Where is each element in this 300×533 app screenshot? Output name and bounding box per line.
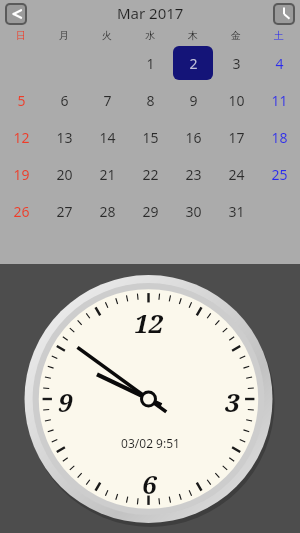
button[interactable]: 12: [1, 120, 41, 154]
staticText: 23: [185, 165, 202, 184]
staticText: 31: [228, 202, 245, 221]
staticText: 月: [59, 29, 69, 42]
staticText: 29: [142, 202, 159, 221]
staticText: 20: [56, 165, 73, 184]
button[interactable]: 23: [173, 157, 213, 191]
button[interactable]: 7: [87, 83, 127, 117]
staticText: 木: [188, 29, 198, 42]
staticText: 土: [274, 29, 284, 42]
staticText: 6: [60, 91, 69, 110]
button[interactable]: 16: [173, 120, 213, 154]
button[interactable]: Back: [5, 3, 27, 25]
button[interactable]: 3: [216, 46, 256, 80]
button[interactable]: 19: [1, 157, 41, 191]
staticText: 24: [228, 165, 245, 184]
button[interactable]: 6: [44, 83, 84, 117]
button[interactable]: 26: [1, 194, 41, 228]
staticText: 6: [142, 466, 157, 498]
button[interactable]: 22: [130, 157, 170, 191]
staticText: 10: [228, 91, 245, 110]
button[interactable]: Clock: [273, 3, 295, 25]
staticText: 26: [13, 202, 30, 221]
button[interactable]: 24: [216, 157, 256, 191]
staticText: 14: [99, 128, 116, 147]
staticText: 22: [142, 165, 159, 184]
staticText: 25: [271, 165, 288, 184]
button[interactable]: 10: [216, 83, 256, 117]
button[interactable]: Analog clock showing 9:51: [0, 264, 300, 533]
staticText: Mar 2017: [117, 3, 184, 23]
staticText: 13: [56, 128, 73, 147]
staticText: 18: [271, 128, 288, 147]
staticText: 金: [231, 29, 241, 42]
staticText: 9: [58, 384, 73, 416]
staticText: 12: [134, 305, 164, 337]
button[interactable]: 8: [130, 83, 170, 117]
button[interactable]: 4: [259, 46, 299, 80]
button[interactable]: 13: [44, 120, 84, 154]
button[interactable]: 29: [130, 194, 170, 228]
button[interactable]: 5: [1, 83, 41, 117]
staticText: 12: [13, 128, 30, 147]
staticText: 火: [102, 29, 112, 42]
staticText: 2: [189, 54, 198, 73]
staticText: 27: [56, 202, 73, 221]
button[interactable]: 20: [44, 157, 84, 191]
staticText: 3: [225, 384, 240, 416]
staticText: 21: [99, 165, 116, 184]
button[interactable]: 17: [216, 120, 256, 154]
staticText: 1: [146, 54, 155, 73]
staticText: 30: [185, 202, 202, 221]
staticText: 28: [99, 202, 116, 221]
staticText: 11: [271, 91, 288, 110]
staticText: 19: [13, 165, 30, 184]
staticText: 16: [185, 128, 202, 147]
button[interactable]: 9: [173, 83, 213, 117]
staticText: 日: [16, 29, 26, 42]
button[interactable]: 27: [44, 194, 84, 228]
staticText: 5: [17, 91, 26, 110]
button[interactable]: 2: [173, 46, 213, 80]
button[interactable]: 15: [130, 120, 170, 154]
staticText: 7: [103, 91, 112, 110]
staticText: 水: [145, 29, 155, 42]
staticText: 15: [142, 128, 159, 147]
button[interactable]: 1: [130, 46, 170, 80]
staticText: 17: [228, 128, 245, 147]
button[interactable]: 30: [173, 194, 213, 228]
staticText: 3: [232, 54, 241, 73]
button[interactable]: 11: [259, 83, 299, 117]
button[interactable]: 21: [87, 157, 127, 191]
staticText: 8: [146, 91, 155, 110]
staticText: 9: [189, 91, 198, 110]
button[interactable]: 28: [87, 194, 127, 228]
button[interactable]: 18: [259, 120, 299, 154]
button[interactable]: 14: [87, 120, 127, 154]
staticText: 03/02 9:51: [121, 435, 180, 451]
button[interactable]: 25: [259, 157, 299, 191]
staticText: 4: [275, 54, 284, 73]
button[interactable]: 31: [216, 194, 256, 228]
